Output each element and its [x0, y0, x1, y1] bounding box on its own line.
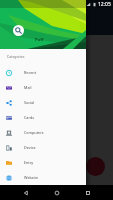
button[interactable]: Computers	[0, 125, 86, 140]
button[interactable]: Home	[51, 187, 62, 198]
staticText: Social	[24, 100, 35, 105]
button[interactable]: Cards	[0, 110, 86, 125]
button[interactable]: Device	[0, 140, 86, 155]
staticText: Puff	[35, 37, 44, 43]
button[interactable]: Recent apps	[82, 187, 93, 198]
staticText: Cards	[24, 115, 35, 120]
button[interactable]: Social	[0, 95, 86, 110]
button[interactable]: Entry	[0, 155, 86, 170]
button[interactable]: Mail	[0, 80, 86, 95]
staticText: Computers	[24, 130, 44, 135]
staticText: Recent	[24, 70, 37, 75]
staticText: Device	[24, 145, 36, 150]
staticText: Mail	[24, 85, 32, 90]
button[interactable]: Website	[0, 170, 86, 185]
button[interactable]: Recent	[0, 65, 86, 80]
staticText: Website	[24, 175, 39, 180]
button[interactable]: Compose	[86, 157, 105, 176]
staticText: Entry	[24, 160, 34, 165]
staticText: 12:05	[98, 1, 111, 8]
staticText: Categories	[7, 54, 25, 59]
button[interactable]: Back	[20, 187, 31, 198]
